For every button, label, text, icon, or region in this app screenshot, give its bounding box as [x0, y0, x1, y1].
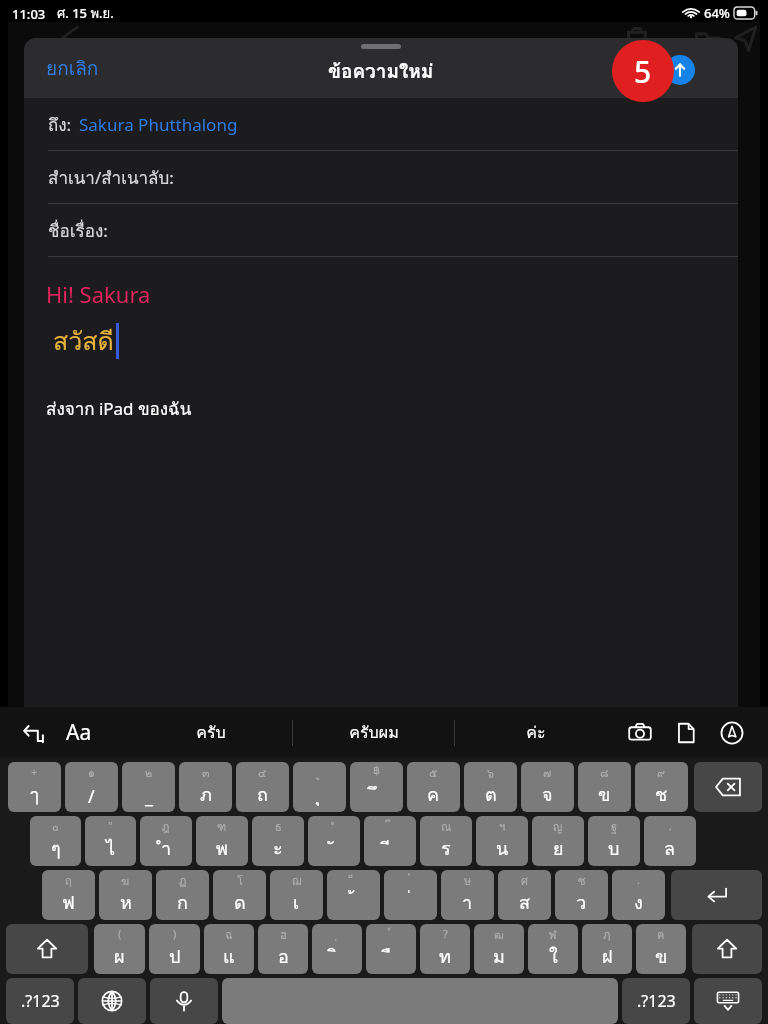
button[interactable]: ชื่อเรื่อง: — [24, 204, 738, 256]
button[interactable]: ์ — [366, 924, 416, 974]
staticText: Hi! Sakura — [46, 279, 151, 309]
button[interactable]: ๕ — [407, 762, 460, 812]
staticText: ถึง: — [48, 111, 72, 138]
staticText: + — [31, 764, 38, 779]
button[interactable]: ค่ะ — [455, 707, 616, 758]
button[interactable]: Hide keyboard — [694, 978, 762, 1024]
button[interactable]: Camera — [622, 715, 658, 751]
staticText: ฅ — [657, 926, 665, 943]
staticText: ฮ — [280, 926, 287, 943]
button[interactable]: ๋ — [384, 870, 437, 920]
button[interactable]: Aa — [60, 714, 98, 751]
button[interactable]: Send — [665, 55, 695, 85]
button[interactable]: Return — [671, 870, 762, 920]
staticText: ครับผม — [349, 720, 399, 745]
button[interactable]: ฤ — [42, 870, 95, 920]
staticText: ฉ — [225, 926, 233, 943]
staticText: ฤ — [65, 872, 72, 889]
button[interactable]: สำเนา/สำเนาลับ: — [24, 151, 738, 203]
button[interactable]: ถึง: — [24, 98, 738, 150]
button[interactable]: ๓ — [179, 762, 232, 812]
button[interactable]: ณ — [420, 816, 472, 866]
staticText: ฐ — [611, 818, 618, 835]
button[interactable]: ฉ — [204, 924, 254, 974]
button[interactable]: Dictate — [150, 978, 218, 1024]
button[interactable]: โ — [213, 870, 266, 920]
button[interactable]: ธ — [252, 816, 304, 866]
button[interactable]: ฑ — [196, 816, 248, 866]
staticText: 5 — [634, 51, 652, 92]
button[interactable]: Markup — [714, 715, 750, 751]
button[interactable]: ฮ — [258, 924, 308, 974]
button[interactable]: ฏ — [156, 870, 209, 920]
button[interactable]: ฆ — [99, 870, 152, 920]
staticText: สำเนา/สำเนาลับ: — [48, 164, 174, 191]
button[interactable]: ๊ — [364, 816, 416, 866]
button[interactable]: Change keyboard — [78, 978, 146, 1024]
staticText: 64% — [704, 4, 730, 22]
button[interactable]: ๙ — [635, 762, 688, 812]
button[interactable]: ศ — [498, 870, 551, 920]
staticText: ฯ — [499, 818, 506, 835]
button[interactable]: 5 notifications — [612, 40, 674, 102]
button[interactable]: ๗ — [521, 762, 574, 812]
button[interactable]: + — [8, 762, 61, 812]
button[interactable]: ู — [293, 762, 346, 812]
staticText: ๙ — [657, 764, 666, 781]
button[interactable]: Backspace — [694, 762, 762, 812]
staticText: ( — [118, 926, 122, 941]
button[interactable]: ฒ — [474, 924, 524, 974]
button[interactable]: ๑ — [65, 762, 118, 812]
button[interactable]: ฎ — [140, 816, 192, 866]
button[interactable]: ๔ — [236, 762, 289, 812]
button[interactable]: ํ — [308, 816, 360, 866]
button[interactable]: ษ — [441, 870, 494, 920]
button[interactable]: ครับ — [130, 707, 292, 758]
staticText: ข — [598, 780, 611, 809]
button[interactable]: ? — [420, 924, 470, 974]
staticText: ๑ — [88, 764, 95, 781]
button[interactable]: ฯ — [476, 816, 528, 866]
button[interactable]: .?123 — [622, 978, 690, 1024]
button[interactable]: ซ — [555, 870, 608, 920]
button[interactable]: , — [644, 816, 696, 866]
button[interactable]: ฌ — [270, 870, 323, 920]
button[interactable]: ฦ — [582, 924, 632, 974]
button[interactable]: Shift — [6, 924, 88, 974]
staticText: ๖ — [487, 764, 494, 781]
button[interactable]: Space — [222, 978, 618, 1024]
button[interactable]: ญ — [532, 816, 584, 866]
staticText: ชื่อเรื่อง: — [48, 217, 108, 244]
staticText: ๅ — [30, 780, 39, 809]
button[interactable]: ๘ — [578, 762, 631, 812]
staticText: ป — [169, 942, 181, 971]
staticText: ยกเลิก — [46, 53, 99, 83]
staticText: ณ — [441, 818, 452, 835]
staticText: Sakura Phutthalong — [79, 113, 238, 136]
staticText: ฎ — [162, 818, 170, 835]
button[interactable]: Hi! Sakura — [24, 257, 738, 707]
button[interactable]: ฬ — [528, 924, 578, 974]
button[interactable]: .?123 — [6, 978, 74, 1024]
button[interactable]: ๐ — [30, 816, 81, 866]
button[interactable]: ยกเลิก — [32, 45, 113, 91]
staticText: , — [669, 818, 672, 833]
button[interactable]: . — [612, 870, 665, 920]
button[interactable]: ฐ — [588, 816, 640, 866]
staticText: . — [637, 872, 640, 887]
button[interactable]: ๖ — [464, 762, 517, 812]
button[interactable]: ) — [149, 924, 200, 974]
button[interactable]: Attach document — [668, 715, 704, 751]
staticText: ใ — [549, 942, 558, 971]
button[interactable]: " — [85, 816, 136, 866]
button[interactable]: ครับผม — [293, 707, 454, 758]
button[interactable]: Undo — [16, 716, 50, 750]
button[interactable]: Shift — [692, 924, 762, 974]
button[interactable]: ฅ — [636, 924, 686, 974]
staticText: า — [462, 888, 473, 917]
button[interactable]: ฿ — [350, 762, 403, 812]
button[interactable]: ็ — [327, 870, 380, 920]
button[interactable]: ฺ — [312, 924, 362, 974]
button[interactable]: ๒ — [122, 762, 175, 812]
button[interactable]: ( — [94, 924, 145, 974]
